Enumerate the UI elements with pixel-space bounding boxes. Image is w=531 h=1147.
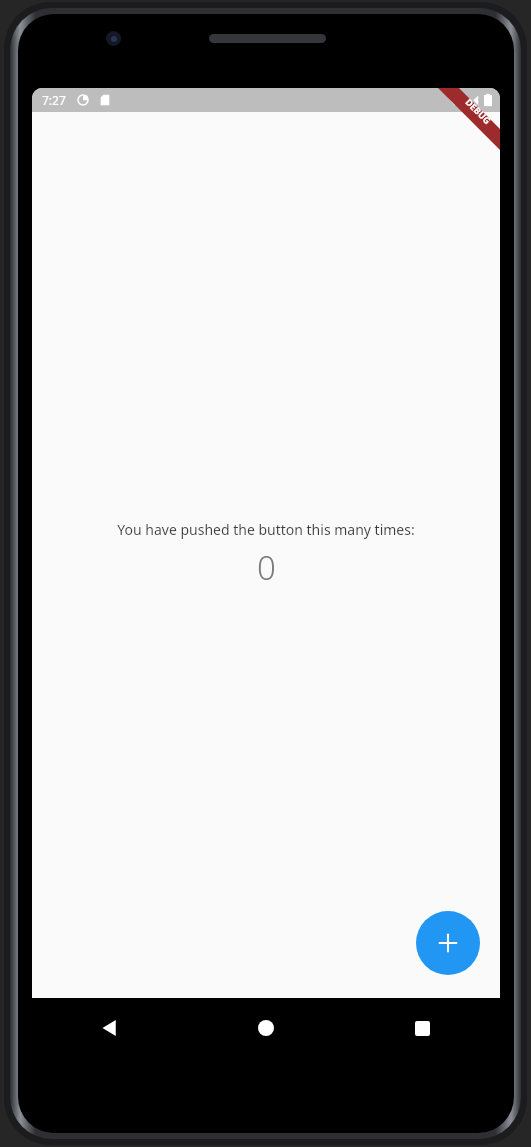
staticText: 7:27 (42, 92, 66, 108)
staticText: You have pushed the button this many tim… (117, 520, 415, 539)
button[interactable]: Increment (416, 911, 480, 975)
button[interactable]: Back (32, 998, 188, 1058)
button[interactable]: Home (188, 998, 344, 1058)
button[interactable]: Recent apps (344, 998, 500, 1058)
staticText: 0 (257, 545, 276, 590)
staticText: DEBUG (463, 96, 494, 126)
